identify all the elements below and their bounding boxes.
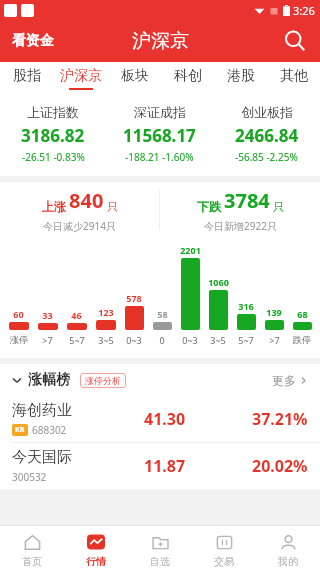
staticText: 3:26	[293, 3, 315, 18]
staticText: >7	[269, 334, 280, 346]
staticText: 3~5	[210, 334, 226, 346]
button[interactable]: 涨幅榜	[12, 371, 70, 389]
staticText: 123	[98, 306, 114, 318]
staticText: 只	[273, 200, 284, 214]
staticText: 跌停	[293, 334, 311, 345]
staticText: 只	[107, 200, 118, 214]
staticText: >7	[42, 334, 53, 346]
staticText: 板块	[121, 67, 149, 85]
staticText: 上涨	[42, 199, 66, 214]
staticText: 58	[157, 308, 168, 320]
staticText: 41.30	[144, 408, 186, 430]
staticText: 今天国际	[12, 448, 72, 467]
staticText: -188.21 -1.60%	[125, 150, 194, 164]
staticText: 首页	[22, 555, 42, 568]
staticText: 3186.82	[21, 124, 85, 147]
staticText: 沪深京	[132, 29, 189, 53]
staticText: 316	[238, 300, 254, 312]
button[interactable]: 股指	[0, 62, 54, 94]
staticText: 2201	[180, 244, 201, 256]
staticText: 看资金	[12, 32, 54, 50]
staticText: 下跌	[197, 199, 221, 214]
staticText: 33	[42, 309, 53, 321]
staticText: 其他	[280, 67, 308, 85]
staticText: 自选	[150, 555, 170, 568]
button[interactable]: 看资金	[0, 26, 66, 56]
staticText: 0~3	[182, 334, 198, 346]
staticText: 0~3	[126, 334, 142, 346]
staticText: 涨停分析	[85, 375, 121, 386]
button[interactable]: 创业板指	[213, 104, 320, 164]
staticText: 11568.17	[123, 124, 196, 147]
button[interactable]: 我的	[256, 526, 320, 574]
staticText: 840	[69, 187, 104, 214]
button[interactable]: 上证指数	[0, 104, 106, 164]
staticText: 60	[13, 308, 24, 320]
button[interactable]: 港股	[214, 62, 267, 94]
button[interactable]: Search	[270, 28, 320, 54]
staticText: 5~7	[69, 334, 85, 346]
staticText: 1060	[208, 276, 229, 288]
staticText: 科创	[174, 67, 202, 85]
staticText: 3784	[224, 187, 270, 214]
staticText: 300532	[12, 470, 47, 484]
staticText: 更多	[272, 373, 296, 388]
staticText: 11.87	[144, 455, 186, 477]
button[interactable]: 下跌	[160, 182, 320, 238]
staticText: -26.51 -0.83%	[22, 150, 85, 164]
staticText: 上证指数	[27, 104, 79, 120]
staticText: 涨停	[10, 334, 28, 345]
button[interactable]: 其他	[267, 62, 320, 94]
staticText: 深证成指	[134, 104, 186, 120]
staticText: 沪深京	[60, 67, 102, 85]
staticText: 68	[297, 308, 308, 320]
button[interactable]: 深证成指	[106, 104, 213, 164]
staticText: 股指	[13, 67, 41, 85]
staticText: KR	[15, 425, 25, 435]
staticText: 我的	[278, 555, 298, 568]
staticText: 涨幅榜	[28, 371, 70, 389]
staticText: 37.21%	[252, 408, 308, 430]
staticText: 创业板指	[241, 104, 293, 120]
staticText: 交易	[214, 555, 234, 568]
staticText: 20.02%	[252, 455, 308, 477]
staticText: 688302	[32, 423, 67, 437]
staticText: 0	[159, 334, 165, 346]
button[interactable]: 更多	[272, 373, 308, 388]
staticText: 今日减少2914只	[43, 219, 116, 233]
button[interactable]: 行情	[64, 526, 128, 574]
staticText: 2466.84	[235, 124, 299, 147]
staticText: 3~5	[98, 334, 114, 346]
staticText: 港股	[227, 67, 255, 85]
button[interactable]: 科创	[161, 62, 214, 94]
staticText: 46	[71, 309, 82, 321]
staticText: 139	[266, 306, 282, 318]
staticText: 海创药业	[12, 401, 72, 420]
staticText: 今日新增2922只	[204, 219, 277, 233]
button[interactable]: 自选	[128, 526, 192, 574]
button[interactable]: 海创药业	[0, 396, 320, 442]
button[interactable]: 首页	[0, 526, 64, 574]
button[interactable]: 涨停分析	[80, 373, 126, 388]
button[interactable]: 今天国际	[0, 443, 320, 489]
staticText: 578	[126, 292, 142, 304]
button[interactable]: 板块	[108, 62, 161, 94]
button[interactable]: 沪深京	[54, 62, 108, 94]
staticText: -56.85 -2.25%	[235, 150, 298, 164]
staticText: 5~7	[238, 334, 254, 346]
button[interactable]: 交易	[192, 526, 256, 574]
button[interactable]: 上涨	[0, 182, 159, 238]
staticText: 行情	[86, 555, 106, 568]
